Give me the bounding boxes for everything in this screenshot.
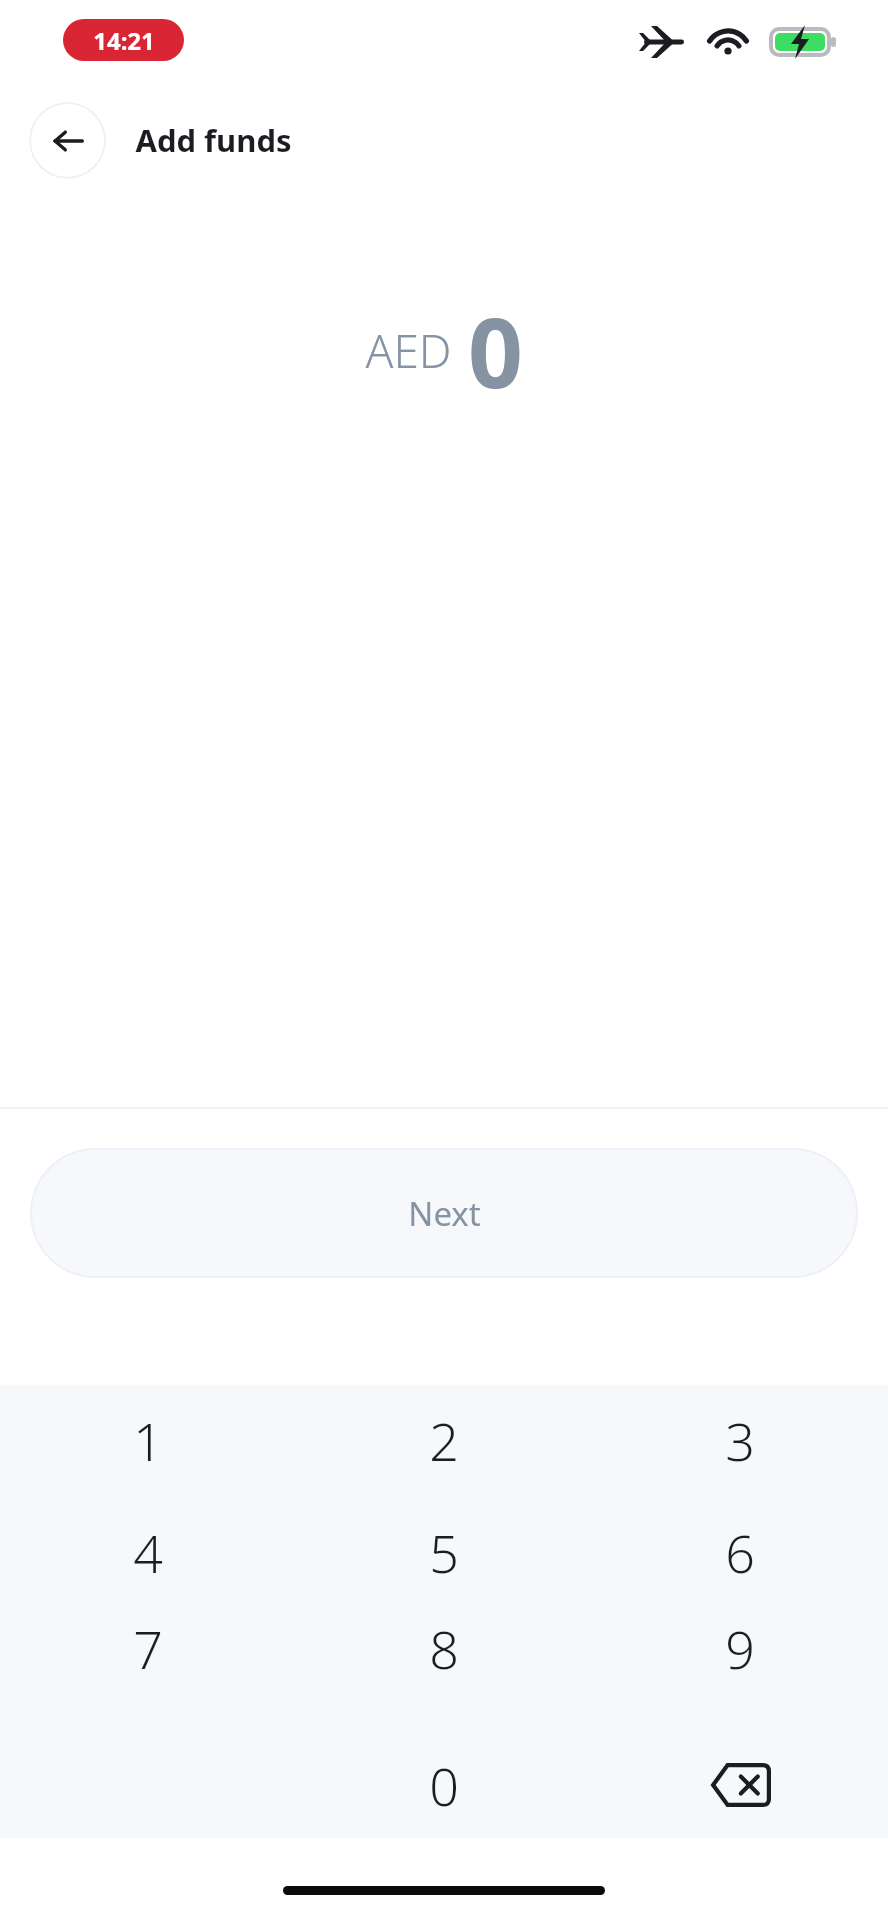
staticText: 7 — [133, 1613, 163, 1684]
staticText: 0 — [468, 285, 523, 416]
button[interactable]: 8 — [334, 1592, 554, 1704]
staticText: 3 — [725, 1405, 755, 1476]
button[interactable]: 4 — [38, 1496, 258, 1608]
staticText: 9 — [725, 1613, 755, 1684]
staticText: 8 — [429, 1613, 459, 1684]
staticText: 14:21 — [93, 24, 155, 57]
button[interactable]: 0 — [334, 1729, 554, 1841]
staticText: 5 — [429, 1517, 459, 1588]
button[interactable]: Next — [30, 1148, 858, 1278]
button[interactable]: Backspace — [630, 1729, 850, 1841]
button[interactable]: 7 — [38, 1592, 258, 1704]
button[interactable]: 9 — [630, 1592, 850, 1704]
staticText: Add funds — [135, 119, 292, 161]
staticText: AED — [365, 319, 452, 382]
staticText: 2 — [429, 1405, 459, 1476]
staticText: Next — [408, 1191, 481, 1236]
button[interactable]: 3 — [630, 1384, 850, 1496]
button[interactable]: 1 — [38, 1384, 258, 1496]
staticText: 1 — [133, 1405, 163, 1476]
button[interactable]: 6 — [630, 1496, 850, 1608]
staticText: 4 — [133, 1517, 163, 1588]
button[interactable]: Back — [29, 102, 106, 179]
button[interactable]: 5 — [334, 1496, 554, 1608]
staticText: 0 — [429, 1750, 459, 1821]
button[interactable]: 2 — [334, 1384, 554, 1496]
staticText: 6 — [725, 1517, 755, 1588]
